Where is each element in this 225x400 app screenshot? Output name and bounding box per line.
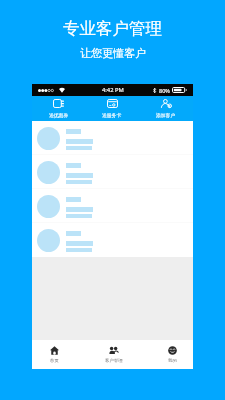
- button[interactable]: [32, 121, 193, 155]
- staticText: 送优惠券: [49, 112, 69, 118]
- staticText: 4:42 PM: [102, 86, 124, 94]
- button[interactable]: [32, 189, 193, 223]
- staticText: 让您更懂客户: [80, 46, 146, 60]
- staticText: 专业客户管理: [63, 18, 162, 39]
- button[interactable]: Home: [34, 340, 75, 369]
- staticText: 添加客户: [156, 112, 176, 118]
- button[interactable]: 送优惠券: [32, 96, 85, 121]
- staticText: 首页: [50, 358, 59, 364]
- button[interactable]: Mine: [152, 340, 193, 369]
- staticText: 客户管理: [105, 358, 123, 364]
- button[interactable]: Customer management: [93, 340, 134, 369]
- button[interactable]: [32, 155, 193, 189]
- button[interactable]: [32, 223, 193, 257]
- staticText: 我的: [168, 358, 177, 364]
- button[interactable]: 送服务卡: [85, 96, 139, 121]
- button[interactable]: 添加客户: [139, 96, 193, 121]
- staticText: 送服务卡: [102, 112, 122, 118]
- staticText: 80%: [159, 87, 170, 94]
